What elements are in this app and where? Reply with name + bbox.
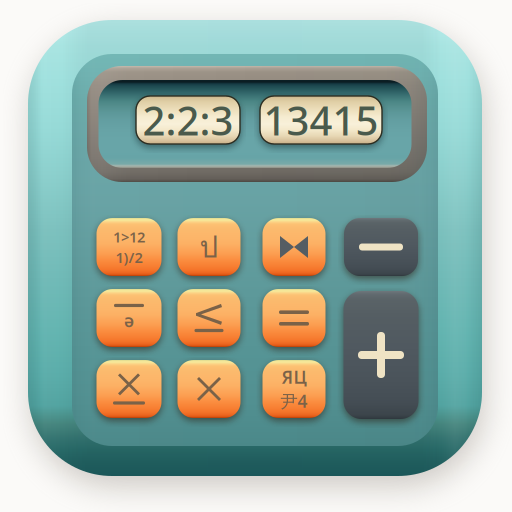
staticText: ป xyxy=(199,224,218,270)
button[interactable]: Equals xyxy=(262,289,325,347)
staticText: ə xyxy=(124,309,134,332)
staticText: 2:2:3 xyxy=(142,93,233,146)
button[interactable]: Multiply xyxy=(177,360,240,418)
button[interactable]: Multiply and equals xyxy=(96,360,161,418)
staticText: 13415 xyxy=(263,93,378,146)
button[interactable]: Swap xyxy=(262,218,325,276)
button[interactable]: Percent xyxy=(262,360,325,418)
staticText: 1>12 xyxy=(113,227,145,246)
button[interactable]: Plus xyxy=(343,291,418,419)
staticText: 1)/2 xyxy=(115,247,142,267)
staticText: 尹4 xyxy=(280,389,307,412)
button[interactable]: Function xyxy=(177,218,240,276)
button[interactable]: Memory xyxy=(96,218,161,276)
staticText: ЯЦ xyxy=(281,365,306,388)
button[interactable]: Divide xyxy=(96,289,161,347)
button[interactable]: Less than or equal to xyxy=(177,289,240,347)
button[interactable]: Minus xyxy=(344,218,418,276)
